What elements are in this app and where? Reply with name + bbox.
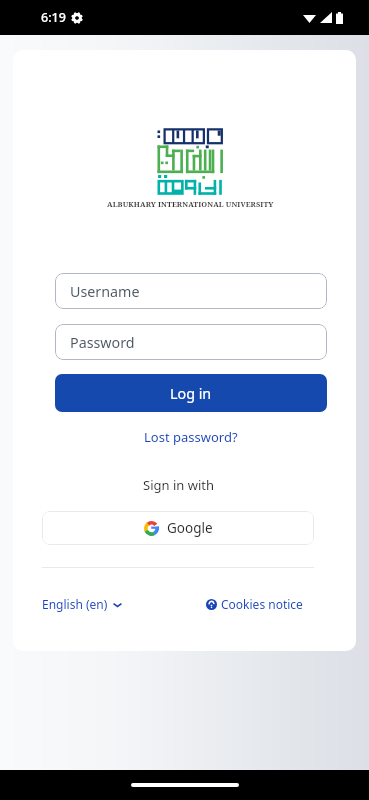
button[interactable]: English (en) xyxy=(42,596,122,612)
staticText: Sign in with xyxy=(143,476,214,494)
staticText: Password xyxy=(70,333,135,352)
button[interactable]: Cookies notice xyxy=(206,596,303,612)
staticText: 6:19 xyxy=(41,9,66,26)
staticText: English (en) xyxy=(42,596,108,612)
button[interactable]: Log in xyxy=(55,374,327,412)
staticText: Username xyxy=(70,282,140,301)
staticText: Google xyxy=(167,519,213,537)
button[interactable]: Username xyxy=(55,273,327,309)
staticText: ALBUKHARY INTERNATIONAL UNIVERSITY xyxy=(107,199,274,209)
button[interactable]: Password xyxy=(55,324,327,360)
staticText: Log in xyxy=(170,384,212,403)
button[interactable]: Lost password? xyxy=(138,426,244,448)
staticText: Cookies notice xyxy=(221,596,303,612)
button[interactable]: Google xyxy=(42,511,314,545)
